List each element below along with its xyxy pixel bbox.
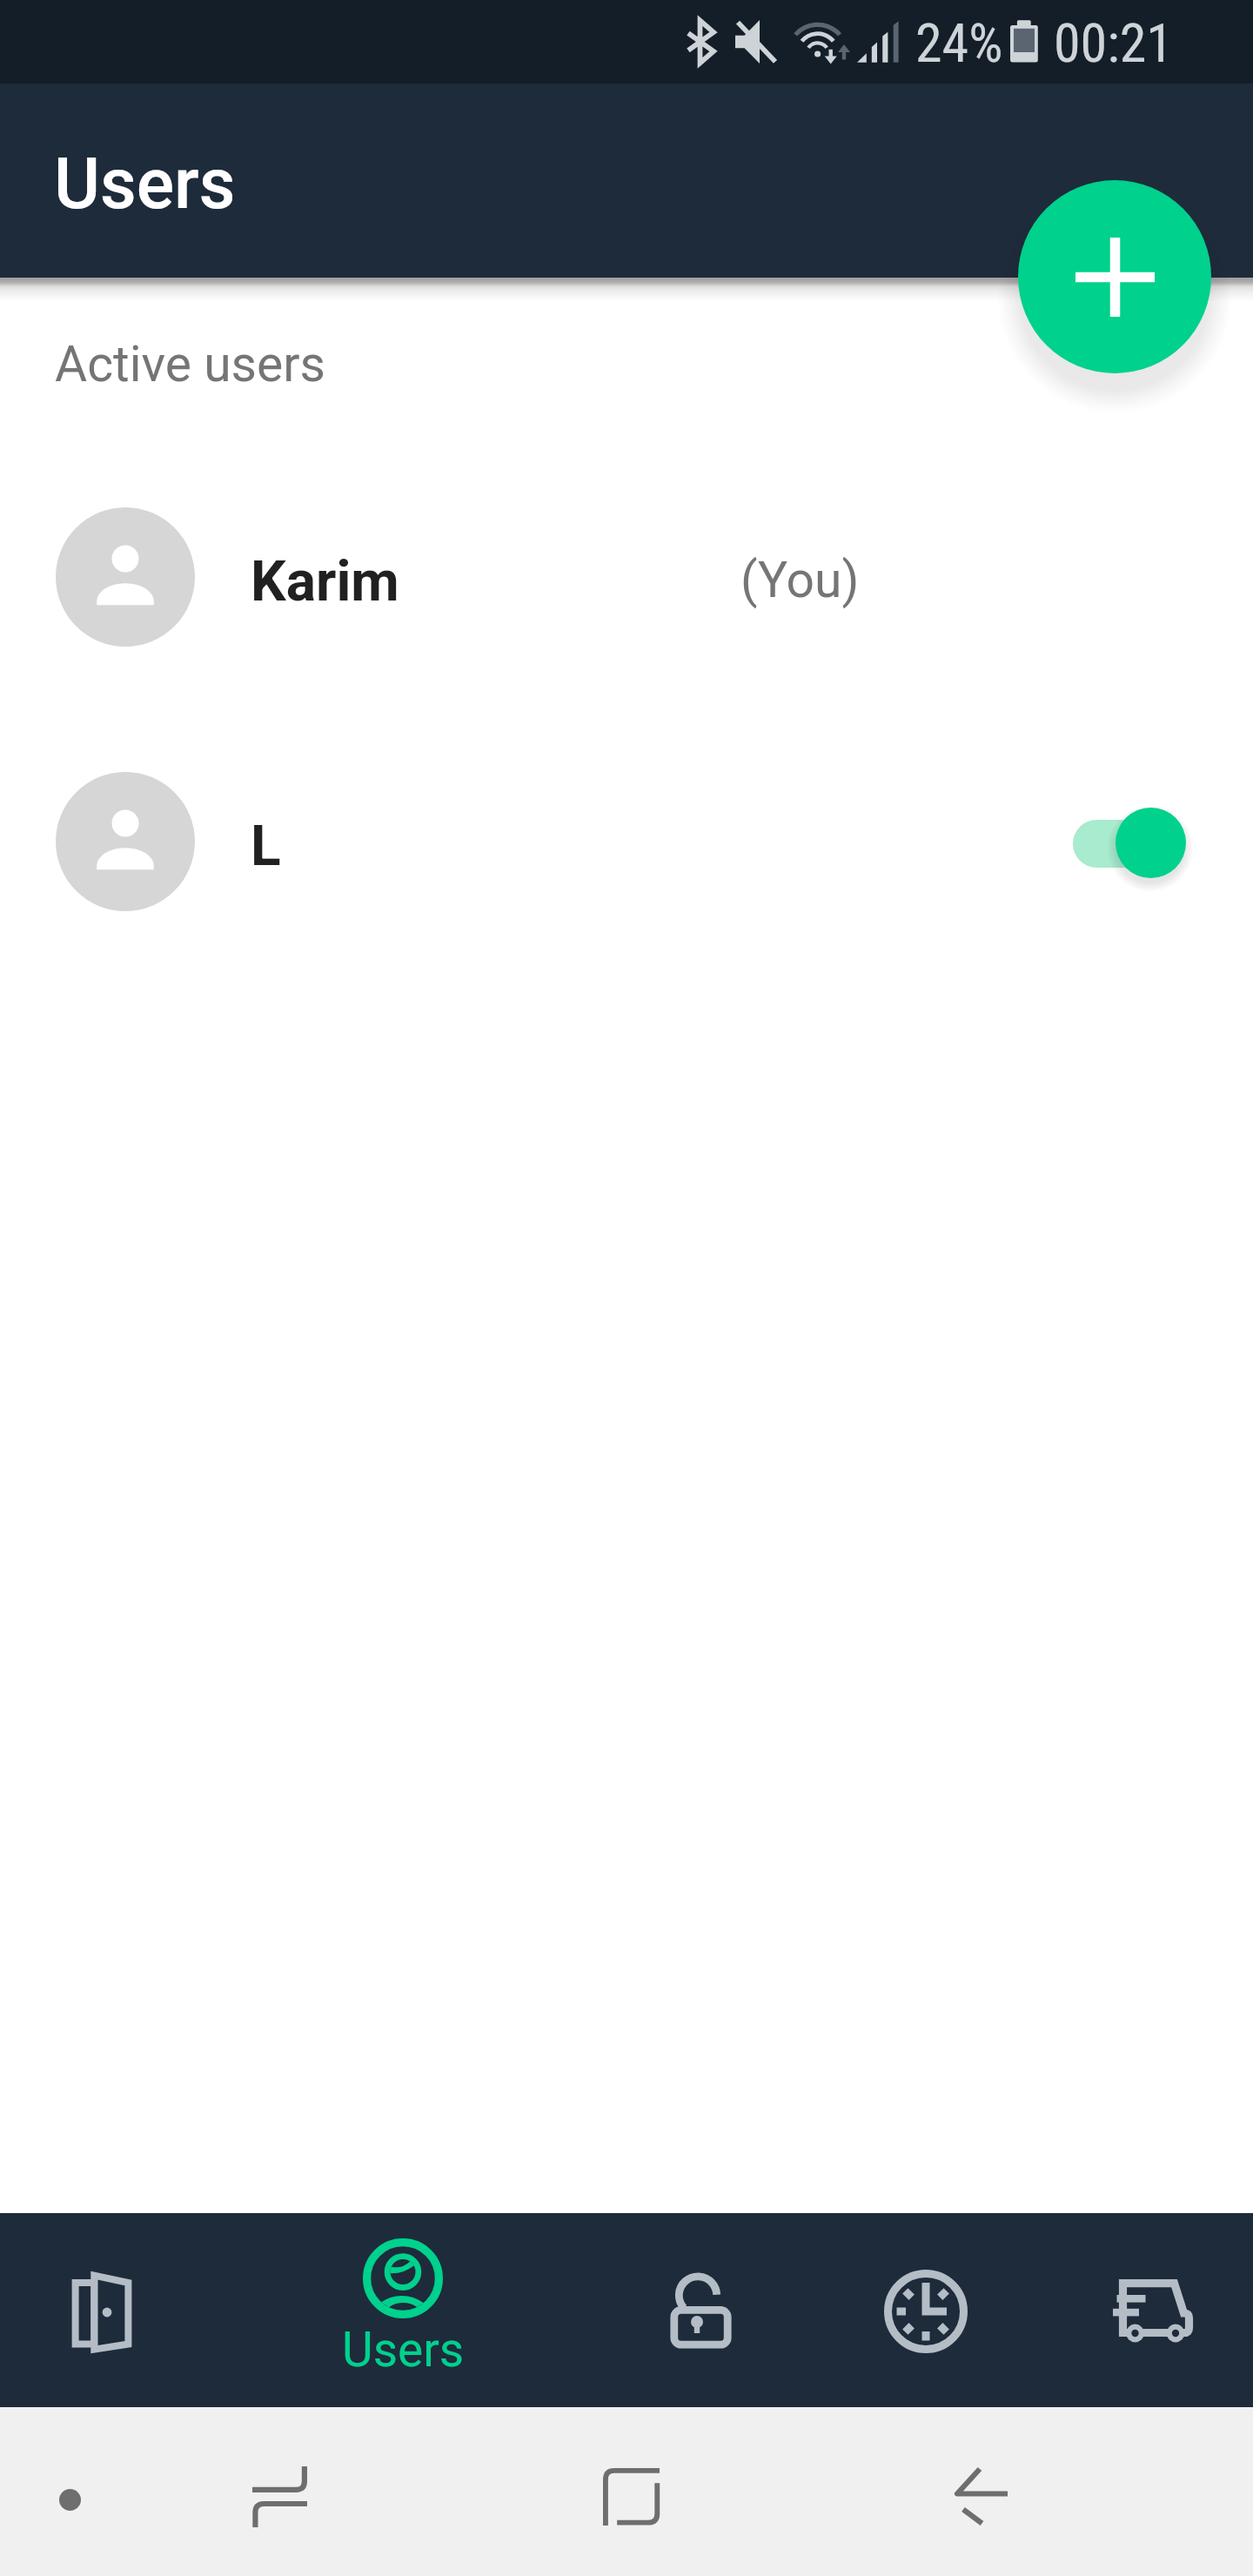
staticText: 00:21 bbox=[1054, 11, 1173, 75]
button[interactable]: Users bbox=[252, 2213, 553, 2407]
staticText: 24% bbox=[915, 11, 1003, 75]
button[interactable]: Back bbox=[867, 2407, 1098, 2576]
staticText: Karim bbox=[251, 549, 399, 614]
button[interactable]: Rooms bbox=[0, 2213, 252, 2407]
button[interactable]: History bbox=[813, 2213, 1039, 2407]
button[interactable]: Locks bbox=[553, 2213, 813, 2407]
staticText: L bbox=[251, 814, 281, 879]
staticText: Users bbox=[54, 143, 236, 225]
button[interactable]: Karim bbox=[0, 480, 1253, 674]
button[interactable]: L bbox=[0, 744, 1253, 939]
button[interactable]: Toggle user access bbox=[1058, 782, 1211, 901]
button[interactable]: Deliveries bbox=[1039, 2213, 1253, 2407]
button[interactable]: Home bbox=[515, 2407, 747, 2576]
staticText: Users bbox=[342, 2322, 465, 2378]
button[interactable]: Add user bbox=[1018, 180, 1211, 373]
button[interactable]: Recents bbox=[165, 2407, 396, 2576]
staticText: (You) bbox=[740, 551, 860, 609]
staticText: Active users bbox=[55, 335, 325, 393]
